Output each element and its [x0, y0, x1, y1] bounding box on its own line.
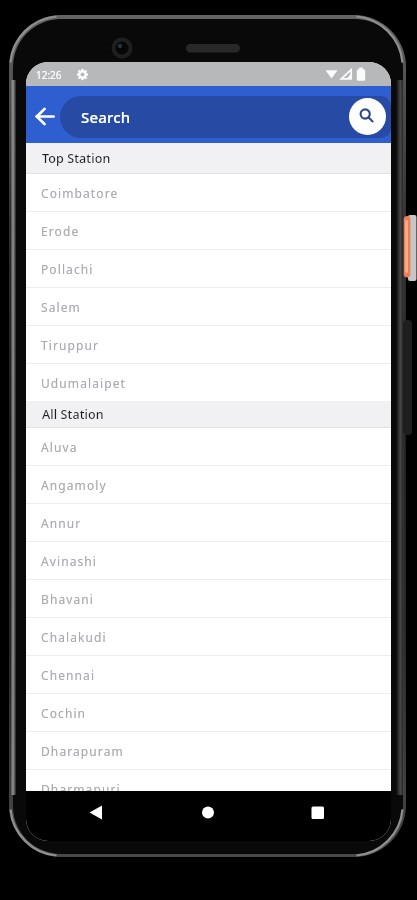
button[interactable]: Annur — [26, 504, 391, 542]
button[interactable]: Erode — [26, 212, 391, 250]
staticText: Tiruppur — [41, 337, 100, 353]
button[interactable]: Udumalaipet — [26, 364, 391, 402]
button[interactable]: Chennai — [26, 656, 391, 694]
button[interactable]: Angamoly — [26, 466, 391, 504]
staticText: Chennai — [41, 667, 96, 683]
staticText: Annur — [41, 515, 82, 531]
button[interactable]: Bhavani — [26, 580, 391, 618]
button[interactable]: Cochin — [26, 694, 391, 732]
button[interactable]: Dharapuram — [26, 732, 391, 770]
staticText: Dharmapuri — [41, 781, 121, 797]
button[interactable]: Dharmapuri — [26, 770, 391, 808]
staticText: Chalakudi — [41, 629, 107, 645]
staticText: Angamoly — [41, 477, 107, 493]
button[interactable] — [349, 98, 386, 135]
button[interactable]: Pollachi — [26, 250, 391, 288]
button[interactable]: Aluva — [26, 428, 391, 466]
staticText: Erode — [41, 223, 80, 239]
button[interactable]: Coimbatore — [26, 174, 391, 212]
button[interactable] — [76, 791, 116, 834]
staticText: Coimbatore — [41, 185, 119, 201]
staticText: All Station — [42, 406, 104, 423]
staticText: Top Station — [42, 150, 111, 167]
staticText: Search — [81, 107, 131, 127]
button[interactable]: Chalakudi — [26, 618, 391, 656]
button[interactable]: Salem — [26, 288, 391, 326]
button[interactable]: Tiruppur — [26, 326, 391, 364]
button[interactable]: Search — [60, 96, 391, 138]
staticText: Aluva — [41, 439, 78, 455]
staticText: Bhavani — [41, 591, 94, 607]
staticText: Pollachi — [41, 261, 94, 277]
button[interactable]: Avinashi — [26, 542, 391, 580]
staticText: Cochin — [41, 705, 87, 721]
button[interactable] — [189, 791, 229, 834]
staticText: Udumalaipet — [41, 375, 127, 391]
staticText: Dharapuram — [41, 743, 124, 759]
button[interactable] — [28, 99, 62, 133]
button[interactable] — [299, 791, 339, 834]
staticText: Avinashi — [41, 553, 98, 569]
staticText: 12:26 — [36, 68, 62, 82]
staticText: Salem — [41, 299, 81, 315]
